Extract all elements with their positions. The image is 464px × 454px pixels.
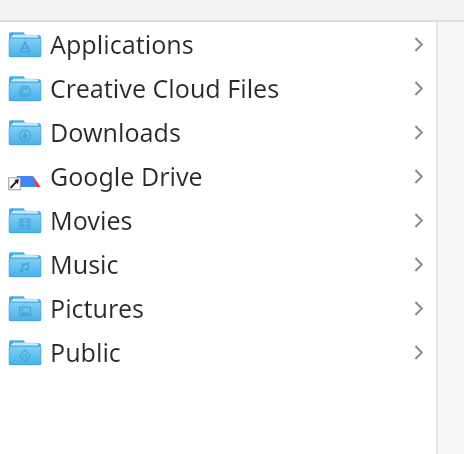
staticText: Creative Cloud Files (50, 71, 280, 105)
staticText: Applications (50, 27, 194, 61)
button[interactable]: Music folder (0, 242, 464, 286)
other: Pictures folder (8, 293, 42, 323)
other: Public folder (8, 337, 42, 367)
other: Google Drive folder (8, 161, 42, 191)
staticText: Downloads (50, 115, 181, 149)
staticText: Pictures (50, 291, 144, 325)
button[interactable]: Downloads folder (0, 110, 464, 154)
staticText: Public (50, 335, 121, 369)
other: Downloads folder (8, 117, 42, 147)
other: Applications folder (8, 29, 42, 59)
other: Creative Cloud Files folder (8, 73, 42, 103)
button[interactable]: Pictures folder (0, 286, 464, 330)
button[interactable]: Google Drive folder (0, 154, 464, 198)
button[interactable]: Movies folder (0, 198, 464, 242)
other: Music folder (8, 249, 42, 279)
staticText: Music (50, 247, 119, 281)
button[interactable]: Public folder (0, 330, 464, 374)
button[interactable]: Applications folder (0, 22, 464, 66)
button[interactable]: Creative Cloud Files folder (0, 66, 464, 110)
other: Movies folder (8, 205, 42, 235)
staticText: Google Drive (50, 159, 203, 193)
staticText: Movies (50, 203, 133, 237)
